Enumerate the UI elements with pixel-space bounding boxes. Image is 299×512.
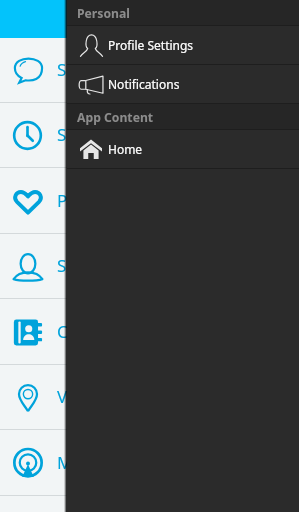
- button[interactable]: Notifications: [67, 65, 299, 104]
- button[interactable]: Contacts: [0, 300, 299, 365]
- staticText: Speech: [57, 58, 115, 81]
- staticText: Contacts: [57, 320, 127, 343]
- staticText: Photos: [57, 189, 113, 212]
- button[interactable]: Media: [0, 431, 299, 496]
- staticText: Notifications: [108, 76, 180, 92]
- staticText: Media: [57, 451, 107, 474]
- button[interactable]: Photos: [0, 169, 299, 234]
- button[interactable]: Speech: [0, 38, 299, 103]
- staticText: Personal: [77, 5, 130, 22]
- button[interactable]: Home: [67, 130, 299, 169]
- staticText: Settings: [57, 254, 122, 277]
- staticText: App Content: [77, 109, 154, 126]
- staticText: Venues: [57, 385, 116, 408]
- staticText: Profile Settings: [108, 37, 194, 53]
- button[interactable]: Messages: [0, 496, 299, 512]
- button[interactable]: Schedule: [0, 103, 299, 168]
- button[interactable]: Venues: [0, 365, 299, 430]
- button[interactable]: Profile Settings: [67, 26, 299, 65]
- button[interactable]: Settings: [0, 234, 299, 299]
- staticText: Schedule: [57, 123, 130, 146]
- staticText: Home: [108, 141, 143, 157]
